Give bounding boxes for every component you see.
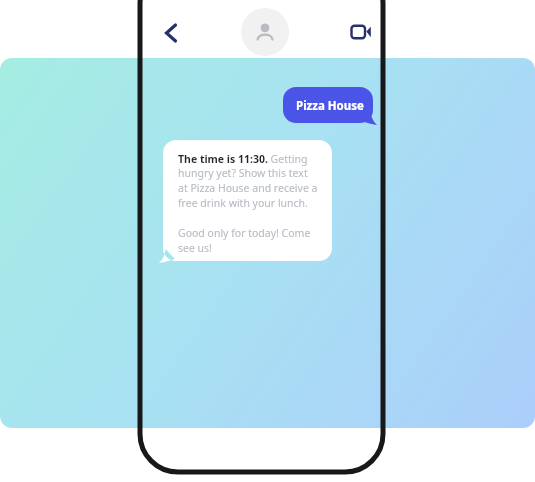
button[interactable]: Pizza House [283,87,373,123]
button[interactable]: Back [152,14,190,52]
button[interactable]: Contact profile [241,8,289,56]
staticText: The time is 11:30. Getting hungry yet? S… [178,152,320,255]
button[interactable]: Video call [342,15,378,49]
button[interactable]: The time is 11:30. Getting hungry yet? S… [163,140,332,261]
staticText: Pizza House [296,98,364,114]
